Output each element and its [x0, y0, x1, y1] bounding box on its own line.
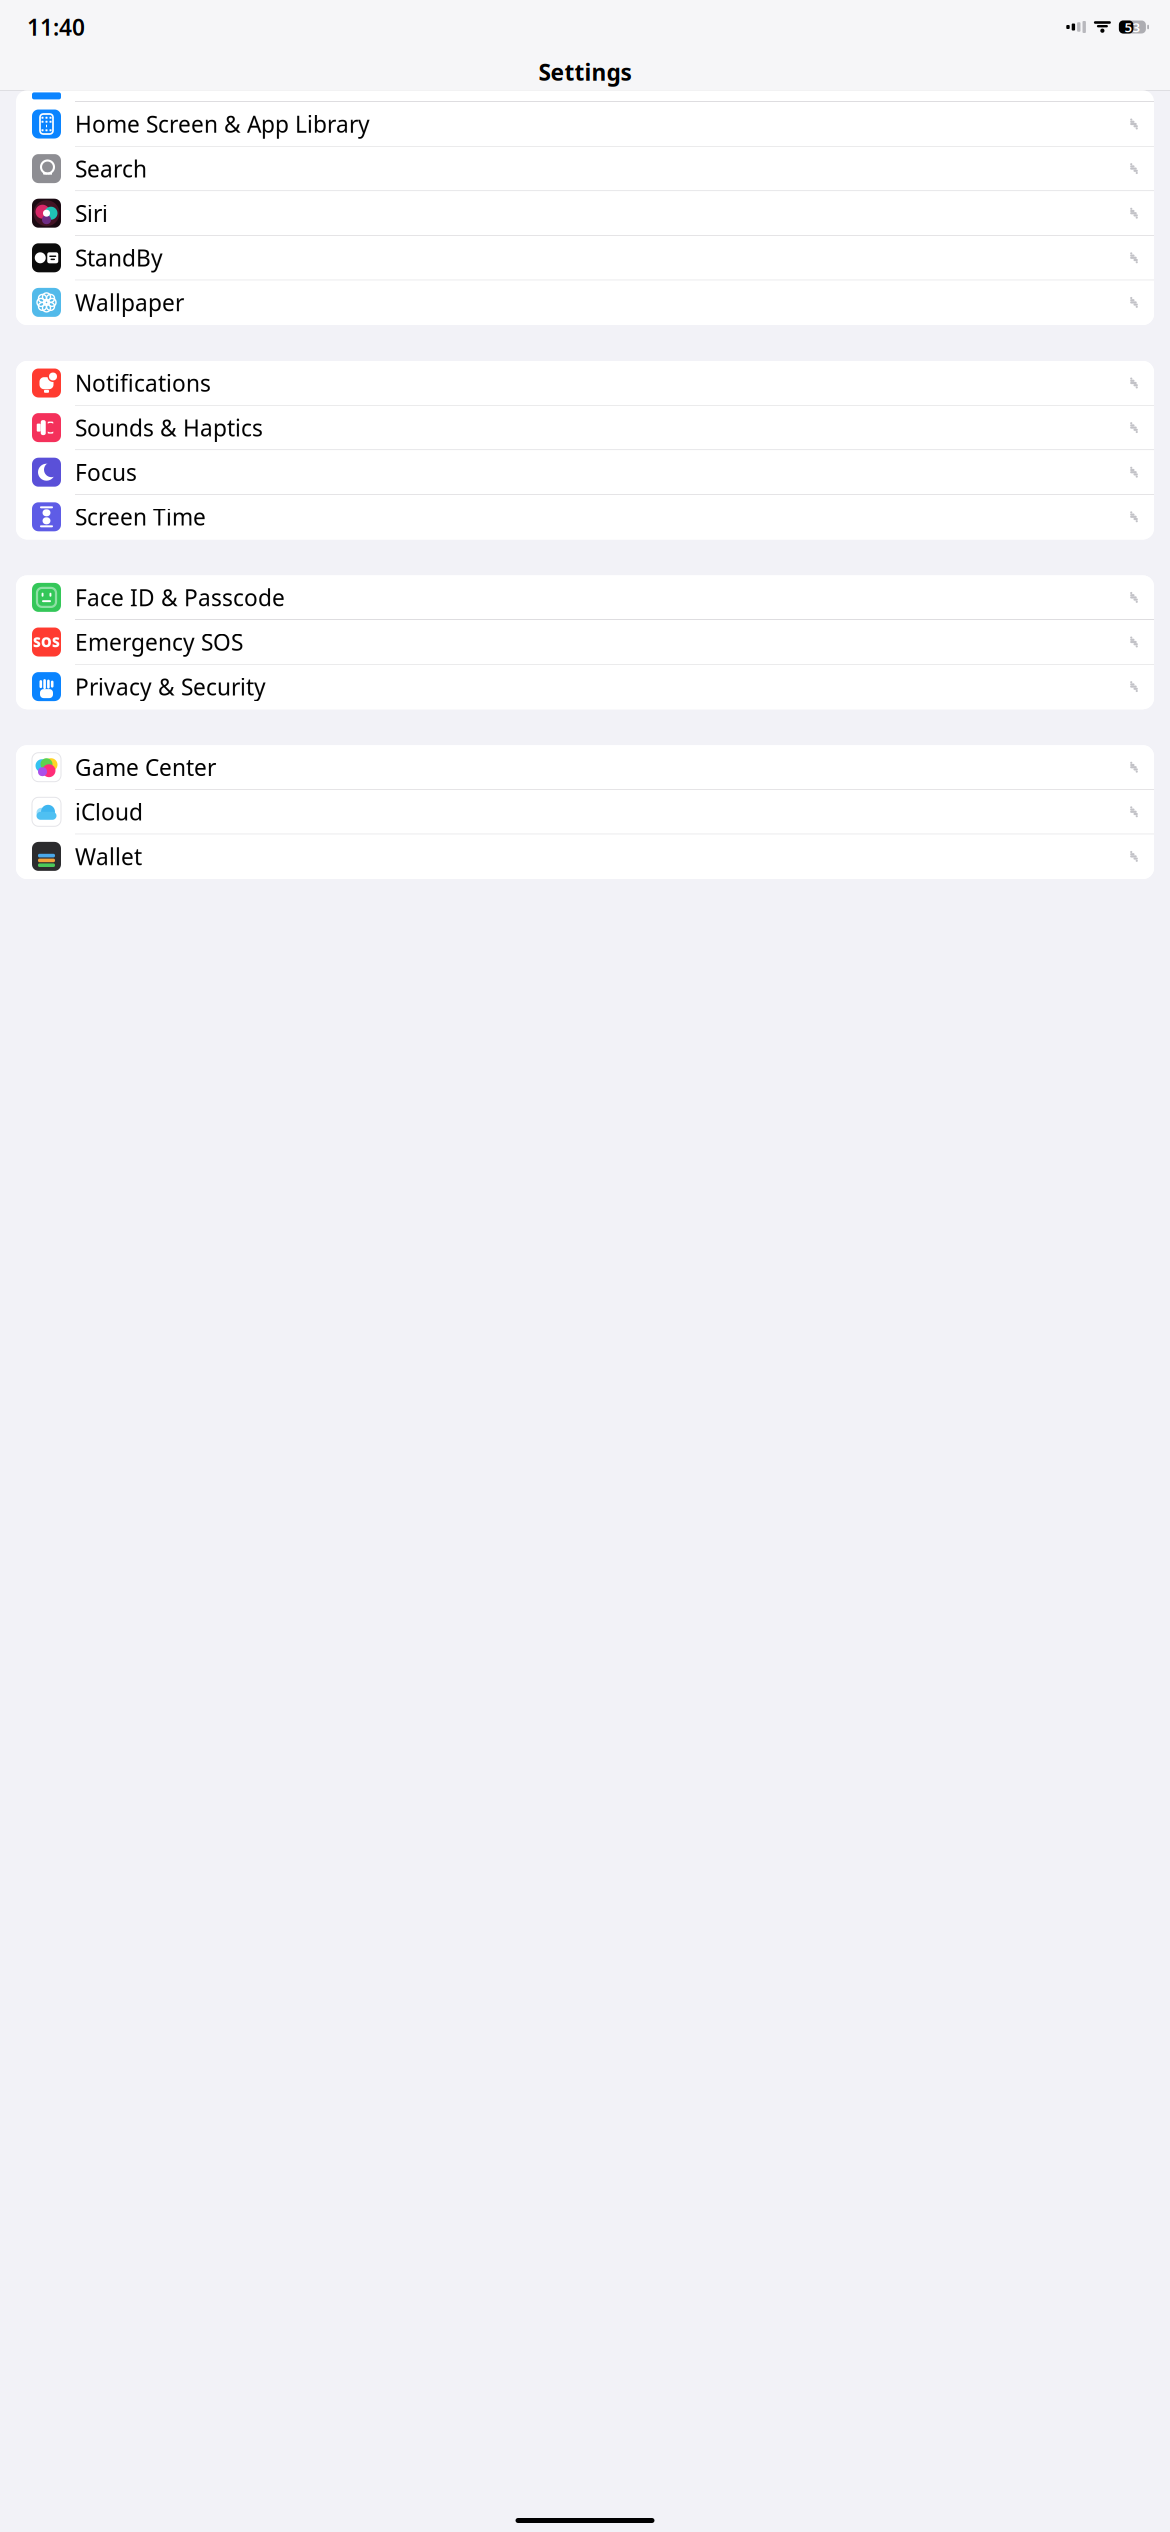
button[interactable]: Search — [16, 147, 1154, 191]
button[interactable]: Privacy & Security — [16, 665, 1154, 709]
staticText: Home Screen & App Library — [75, 109, 370, 139]
button[interactable]: Face ID & Passcode — [16, 575, 1154, 620]
button[interactable]: iCloud — [16, 790, 1154, 834]
staticText: Game Center — [75, 752, 216, 782]
staticText: Wallet — [75, 841, 142, 871]
button[interactable]: SOS — [16, 620, 1154, 665]
button[interactable]: Game Center — [16, 745, 1154, 790]
staticText: StandBy — [75, 243, 163, 273]
staticText: Search — [75, 153, 147, 184]
button[interactable]: Screen Time — [16, 495, 1154, 539]
staticText: Settings — [538, 57, 631, 87]
staticText: SOS — [33, 633, 60, 651]
staticText: Siri — [75, 198, 108, 228]
button[interactable]: Sounds & Haptics — [16, 406, 1154, 450]
staticText: Emergency SOS — [75, 627, 243, 657]
staticText: Focus — [75, 457, 137, 487]
staticText: Wallpaper — [75, 287, 184, 317]
button[interactable]: Focus — [16, 450, 1154, 495]
staticText: Screen Time — [75, 502, 206, 532]
button[interactable]: StandBy — [16, 236, 1154, 280]
staticText: Sounds & Haptics — [75, 412, 263, 443]
staticText: iCloud — [75, 797, 143, 827]
staticText: 53 — [1124, 18, 1140, 36]
button[interactable]: Siri — [16, 191, 1154, 236]
button[interactable]: Home Screen & App Library — [16, 102, 1154, 147]
button[interactable]: Wallpaper — [16, 280, 1154, 325]
staticText: Privacy & Security — [75, 671, 266, 702]
staticText: Notifications — [75, 368, 211, 398]
button[interactable]: Wallet — [16, 834, 1154, 879]
staticText: 11:40 — [27, 12, 85, 42]
staticText: Face ID & Passcode — [75, 582, 285, 612]
button[interactable]: Notifications — [16, 361, 1154, 406]
